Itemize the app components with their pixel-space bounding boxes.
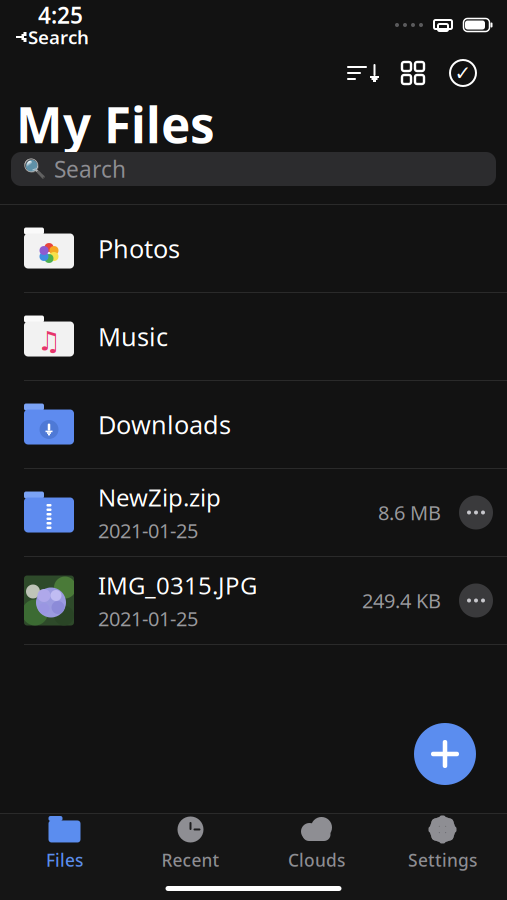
button[interactable]: Search <box>0 25 507 49</box>
staticText: 8.6 MB <box>378 499 441 526</box>
button[interactable]: Clouds <box>253 814 379 872</box>
staticText: 2021-01-25 <box>98 605 198 632</box>
staticText: NewZip.zip <box>98 481 221 513</box>
button[interactable]: Select <box>441 51 485 95</box>
staticText: 2021-01-25 <box>98 517 198 544</box>
staticText: My Files <box>16 91 215 157</box>
staticText: 4:25 <box>38 0 83 30</box>
button[interactable]: ♫ <box>0 293 507 381</box>
staticText: Search <box>54 154 126 184</box>
staticText: ✓ <box>454 62 471 84</box>
button[interactable]: Photos <box>0 205 507 293</box>
button[interactable]: More options <box>459 495 493 529</box>
button[interactable]: Add <box>414 723 476 785</box>
staticText: Recent <box>161 848 219 871</box>
button[interactable]: Grid view <box>391 51 435 95</box>
button[interactable]: Settings <box>379 814 505 872</box>
staticText: Files <box>46 848 83 871</box>
staticText: Music <box>98 320 168 353</box>
button[interactable]: Sort <box>341 51 385 95</box>
button[interactable]: 🔍 <box>11 152 496 186</box>
button[interactable]: Downloads <box>0 381 507 469</box>
button[interactable]: NewZip.zip <box>0 469 507 557</box>
staticText: 🔍 <box>23 158 46 180</box>
button[interactable]: Files <box>1 814 127 872</box>
staticText: Clouds <box>288 848 345 871</box>
button[interactable]: More options <box>459 583 493 617</box>
button[interactable]: Recent <box>127 814 253 872</box>
staticText: Downloads <box>98 408 231 441</box>
button[interactable]: IMG_0315.JPG <box>0 557 507 645</box>
staticText: IMG_0315.JPG <box>98 569 257 601</box>
staticText: Photos <box>98 232 180 265</box>
staticText: ♫ <box>37 326 61 356</box>
staticText: Search <box>28 25 89 49</box>
staticText: 249.4 KB <box>362 587 441 614</box>
staticText: Settings <box>408 848 477 871</box>
